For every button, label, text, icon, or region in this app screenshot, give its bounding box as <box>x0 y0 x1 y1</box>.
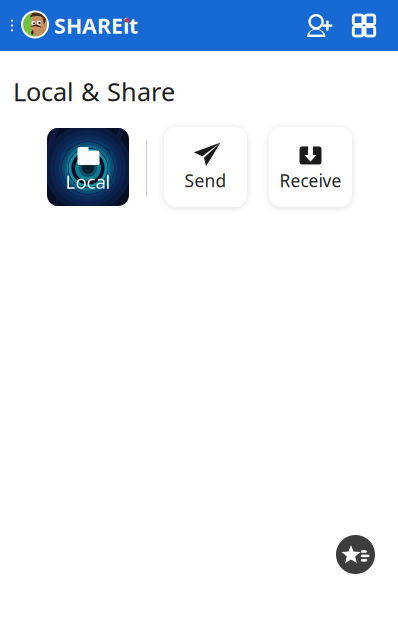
button[interactable]: Send <box>164 127 247 207</box>
button[interactable]: Add friend <box>305 3 339 47</box>
staticText: Receive <box>279 169 341 192</box>
button[interactable]: Local <box>47 128 129 206</box>
staticText: Local <box>65 169 110 194</box>
staticText: Send <box>184 169 226 192</box>
button[interactable]: Rate us <box>336 535 375 574</box>
button[interactable]: Receive <box>269 127 352 207</box>
button[interactable]: More options <box>5 10 19 40</box>
button[interactable]: Profile <box>19 3 51 47</box>
staticText: SHAREit <box>54 11 138 40</box>
button[interactable]: Apps <box>349 3 379 47</box>
staticText: Local & Share <box>13 74 175 108</box>
